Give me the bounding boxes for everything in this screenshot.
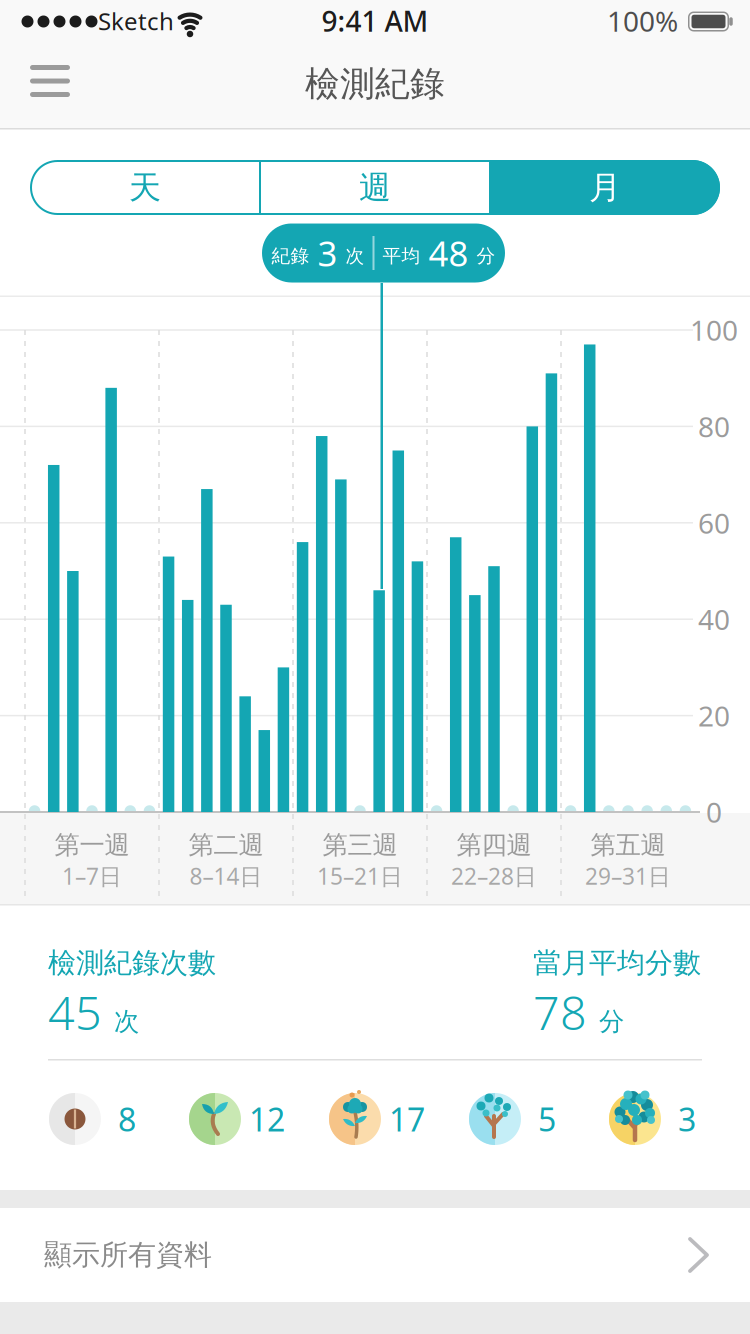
staticText: 1–7日 (62, 861, 122, 891)
staticText: 檢測紀錄次數 (48, 946, 216, 980)
staticText: 第五週 (590, 829, 665, 860)
button[interactable]: 天 (30, 160, 260, 215)
staticText: 29–31日 (585, 861, 671, 891)
staticText: 100 (690, 311, 738, 349)
staticText: 顯示所有資料 (44, 1238, 212, 1272)
staticText: 60 (698, 504, 730, 541)
staticText: 平均 (382, 244, 420, 267)
staticText: 月 (589, 168, 621, 207)
staticText: 80 (698, 408, 730, 445)
staticText: 檢測紀錄 (305, 63, 445, 105)
staticText: 第二週 (188, 829, 263, 860)
staticText: 100% (607, 2, 678, 40)
staticText: 0 (706, 793, 722, 831)
staticText: 45 (48, 981, 102, 1043)
button[interactable] (22, 53, 78, 109)
staticText: 紀錄 (271, 244, 309, 267)
staticText: 78 (533, 981, 587, 1043)
staticText: 次 (114, 1006, 139, 1037)
staticText: 分 (599, 1006, 624, 1037)
staticText: 第三週 (322, 829, 397, 860)
staticText: 8 (118, 1098, 136, 1140)
staticText: 5 (538, 1098, 556, 1140)
staticText: 第四週 (456, 829, 531, 860)
staticText: 22–28日 (451, 861, 537, 891)
staticText: 8–14日 (189, 861, 262, 891)
staticText: 9:41 AM (321, 2, 428, 40)
staticText: 次 (345, 244, 364, 267)
staticText: 第一週 (54, 829, 129, 860)
staticText: 17 (389, 1098, 425, 1140)
staticText: 20 (698, 697, 730, 734)
staticText: 3 (678, 1098, 696, 1140)
staticText: 48 (428, 230, 468, 276)
button[interactable]: 月 (490, 160, 720, 215)
staticText: 40 (698, 601, 730, 638)
staticText: 天 (129, 168, 161, 207)
staticText: 週 (359, 168, 391, 207)
staticText: 當月平均分數 (533, 946, 701, 980)
staticText: Sketch (98, 5, 174, 37)
button[interactable]: 顯示所有資料 (0, 1208, 750, 1302)
staticText: 分 (476, 244, 495, 267)
staticText: 15–21日 (317, 861, 403, 891)
button[interactable]: 週 (260, 160, 490, 215)
staticText: 3 (317, 230, 337, 276)
staticText: 12 (249, 1098, 285, 1140)
